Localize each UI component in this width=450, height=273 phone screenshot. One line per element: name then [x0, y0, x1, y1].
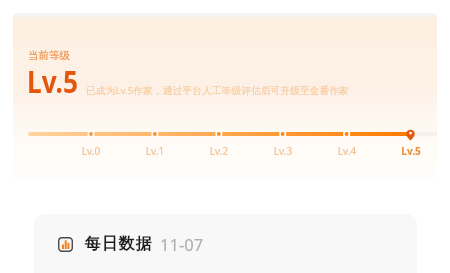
- button[interactable]: Lv.0: [69, 144, 113, 160]
- button[interactable]: Lv.4: [325, 144, 369, 160]
- button[interactable]: 当前等级: [13, 13, 437, 181]
- button[interactable]: Lv.1: [133, 144, 177, 160]
- button[interactable]: Lv.2: [197, 144, 241, 160]
- staticText: 已成为Lv.5作家，通过平台人工等级评估后可升级至金番作家: [86, 84, 349, 97]
- staticText: Lv.1: [133, 144, 177, 158]
- staticText: 每日数据: [84, 234, 152, 254]
- staticText: Lv.0: [69, 144, 113, 158]
- button[interactable]: Daily statistics chart: [34, 214, 417, 273]
- button[interactable]: Lv.5: [389, 144, 433, 160]
- staticText: 当前等级: [28, 49, 70, 62]
- staticText: Lv.2: [197, 144, 241, 158]
- staticText: 11-07: [160, 233, 204, 255]
- staticText: Lv.5: [389, 144, 433, 158]
- staticText: Lv.5: [27, 61, 79, 102]
- staticText: Lv.3: [261, 144, 305, 158]
- other: Daily statistics chart: [58, 237, 73, 252]
- button[interactable]: Lv.3: [261, 144, 305, 160]
- staticText: Lv.4: [325, 144, 369, 158]
